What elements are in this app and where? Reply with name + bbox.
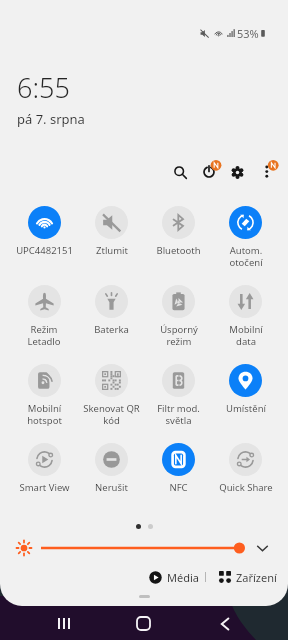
button[interactable]: Baterka [78, 285, 145, 364]
button[interactable]: Ztlumit [78, 206, 145, 285]
staticText: Režim Letadlo [27, 323, 61, 347]
staticText: NFC [169, 481, 188, 494]
button[interactable]: Autom. otočení [212, 206, 279, 285]
button[interactable]: Umístění [212, 364, 279, 443]
staticText: Mobilní hotspot [27, 402, 62, 426]
button[interactable]: Bluetooth [145, 206, 212, 285]
staticText: Bluetooth [156, 244, 201, 257]
staticText: Skenovat QR kód [83, 402, 140, 426]
button[interactable]: Home [127, 607, 160, 640]
staticText: UPC4482151 [16, 244, 73, 257]
staticText: Quick Share [219, 481, 273, 494]
staticText: 53% [237, 26, 259, 41]
staticText: Úsporný režim [160, 323, 198, 347]
button[interactable]: Zařízení [217, 565, 279, 589]
button[interactable]: Search [167, 159, 193, 185]
staticText: pá 7. srpna [17, 110, 85, 128]
button[interactable]: NFC [145, 443, 212, 522]
button[interactable]: UPC4482151 [10, 206, 78, 285]
staticText: 6:55 [17, 69, 70, 106]
button[interactable]: Back [208, 607, 241, 640]
button[interactable]: Expand brightness options [252, 538, 272, 558]
staticText: Autom. otočení [229, 244, 263, 268]
button[interactable]: Režim Letadlo [10, 285, 78, 364]
staticText: Filtr mod. světla [157, 402, 200, 426]
button[interactable]: Settings [224, 159, 250, 185]
button[interactable]: More options [254, 158, 280, 184]
staticText: Zařízení [236, 570, 277, 585]
staticText: Smart View [19, 481, 70, 494]
staticText: Baterka [94, 323, 129, 336]
button[interactable]: Mobilní data [212, 285, 279, 364]
staticText: Ztlumit [96, 244, 128, 257]
button[interactable]: Úsporný režim [145, 285, 212, 364]
button[interactable]: Média [147, 565, 201, 589]
button[interactable]: Skenovat QR kód [78, 364, 145, 443]
button[interactable]: Quick Share [212, 443, 279, 522]
button[interactable]: Mobilní hotspot [10, 364, 78, 443]
button[interactable]: Nerušit [78, 443, 145, 522]
button[interactable]: Recent apps [47, 607, 80, 640]
button[interactable]: Filtr mod. světla [145, 364, 212, 443]
staticText: Nerušit [95, 481, 128, 494]
button[interactable]: Power off [198, 158, 224, 184]
button[interactable]: Smart View [10, 443, 78, 522]
staticText: Mobilní data [229, 323, 263, 347]
staticText: Média [167, 570, 199, 585]
staticText: Umístění [226, 402, 266, 415]
